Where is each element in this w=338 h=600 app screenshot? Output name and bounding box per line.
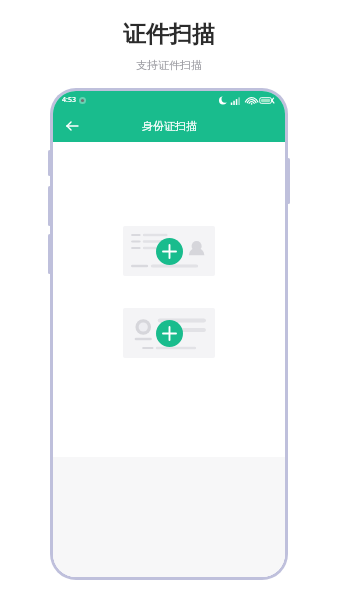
staticText: 证件扫描	[123, 20, 215, 49]
staticText: 身份证扫描	[142, 119, 197, 133]
button[interactable]: Back	[59, 113, 85, 139]
staticText: 支持证件扫描	[136, 58, 202, 72]
button[interactable]: Scan ID back	[123, 308, 215, 358]
button[interactable]: Scan ID front	[123, 226, 215, 276]
staticText: 4:53	[62, 95, 76, 105]
